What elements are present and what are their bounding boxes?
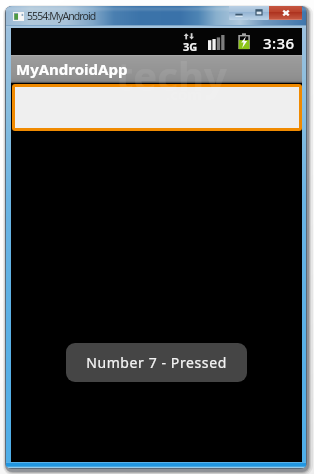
button[interactable]: Minimise [229,6,249,20]
staticText: .com [166,84,202,104]
staticText: MyAndroidApp [16,59,128,79]
staticText: 3:36 [263,33,295,53]
staticText: techy [116,48,227,102]
staticText: 3G [183,39,198,54]
staticText: Number 7 - Pressed [86,353,227,372]
button[interactable]: Close [269,6,302,20]
button[interactable]: Maximise [249,6,269,20]
staticText: 5554:MyAndroid [27,9,96,23]
